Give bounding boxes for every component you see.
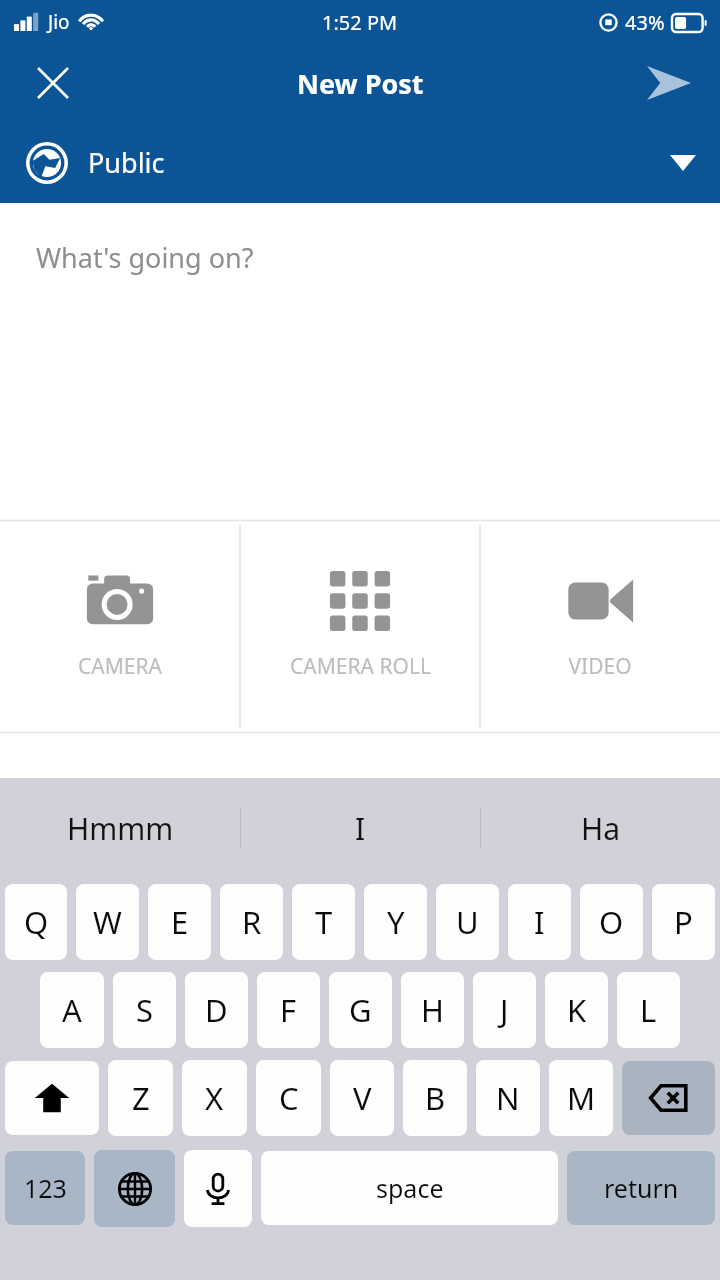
button[interactable]: M bbox=[549, 1060, 613, 1136]
staticText: S bbox=[136, 989, 154, 1031]
staticText: M bbox=[567, 1077, 596, 1119]
staticText: H bbox=[421, 989, 444, 1031]
staticText: New Post bbox=[297, 65, 424, 102]
button[interactable]: C bbox=[256, 1060, 321, 1136]
button[interactable]: Shift bbox=[5, 1061, 99, 1135]
button[interactable]: V bbox=[330, 1060, 394, 1136]
staticText: return bbox=[604, 1171, 679, 1205]
staticText: E bbox=[171, 901, 189, 943]
button[interactable]: J bbox=[473, 972, 536, 1048]
button[interactable]: Close bbox=[20, 50, 86, 116]
button[interactable]: L bbox=[617, 972, 680, 1048]
staticText: N bbox=[496, 1077, 520, 1119]
staticText: 1:52 PM bbox=[322, 9, 398, 36]
button[interactable]: CAMERA bbox=[0, 520, 240, 733]
button[interactable]: Dictate bbox=[184, 1150, 252, 1227]
button[interactable]: X bbox=[182, 1060, 247, 1136]
button[interactable]: P bbox=[652, 884, 715, 960]
staticText: Ha bbox=[581, 808, 621, 849]
button[interactable]: Send bbox=[634, 48, 704, 118]
button[interactable]: VIDEO bbox=[480, 520, 720, 733]
staticText: R bbox=[242, 901, 262, 943]
staticText: 43% bbox=[625, 9, 665, 36]
button[interactable]: U bbox=[436, 884, 499, 960]
button[interactable]: D bbox=[185, 972, 248, 1048]
button[interactable]: Hmmm bbox=[0, 778, 240, 878]
staticText: P bbox=[674, 901, 693, 943]
staticText: CAMERA bbox=[78, 652, 162, 681]
button[interactable]: A bbox=[40, 972, 104, 1048]
button[interactable]: return bbox=[567, 1151, 715, 1225]
button[interactable]: Switch language bbox=[94, 1150, 175, 1227]
staticText: G bbox=[349, 989, 372, 1031]
staticText: VIDEO bbox=[568, 652, 632, 681]
staticText: K bbox=[567, 989, 587, 1031]
staticText: T bbox=[315, 901, 333, 943]
staticText: B bbox=[425, 1077, 446, 1119]
staticText: space bbox=[376, 1171, 444, 1205]
button[interactable]: H bbox=[401, 972, 464, 1048]
staticText: V bbox=[353, 1077, 372, 1119]
button[interactable]: Y bbox=[364, 884, 427, 960]
button[interactable]: Public bbox=[0, 122, 720, 203]
button[interactable]: Ha bbox=[481, 778, 720, 878]
staticText: L bbox=[640, 989, 657, 1031]
staticText: 123 bbox=[24, 1171, 67, 1205]
button[interactable]: W bbox=[76, 884, 139, 960]
button[interactable]: S bbox=[113, 972, 176, 1048]
staticText: D bbox=[205, 989, 228, 1031]
staticText: O bbox=[599, 901, 624, 943]
staticText: I bbox=[534, 901, 545, 943]
staticText: A bbox=[62, 989, 82, 1031]
button[interactable]: O bbox=[580, 884, 643, 960]
staticText: U bbox=[456, 901, 479, 943]
button[interactable]: Backspace bbox=[622, 1061, 715, 1135]
button[interactable]: E bbox=[148, 884, 211, 960]
button[interactable]: K bbox=[545, 972, 608, 1048]
staticText: Q bbox=[24, 901, 49, 943]
staticText: Y bbox=[387, 901, 405, 943]
button[interactable]: CAMERA ROLL bbox=[240, 520, 480, 733]
button[interactable]: space bbox=[261, 1151, 558, 1225]
button[interactable]: I bbox=[241, 778, 480, 878]
staticText: F bbox=[280, 989, 297, 1031]
button[interactable]: R bbox=[220, 884, 283, 960]
button[interactable]: F bbox=[257, 972, 320, 1048]
button[interactable]: Q bbox=[5, 884, 67, 960]
button[interactable]: I bbox=[508, 884, 571, 960]
button[interactable]: G bbox=[329, 972, 392, 1048]
button[interactable]: N bbox=[476, 1060, 540, 1136]
staticText: CAMERA ROLL bbox=[290, 652, 431, 681]
staticText: C bbox=[279, 1077, 299, 1119]
button[interactable]: What's going on? bbox=[0, 203, 720, 520]
staticText: What's going on? bbox=[36, 239, 254, 276]
staticText: Public bbox=[88, 144, 165, 181]
button[interactable]: T bbox=[292, 884, 355, 960]
button[interactable]: 123 bbox=[5, 1151, 85, 1225]
staticText: X bbox=[205, 1077, 224, 1119]
staticText: Z bbox=[132, 1077, 150, 1119]
staticText: W bbox=[93, 901, 122, 943]
staticText: J bbox=[500, 989, 509, 1031]
button[interactable]: B bbox=[403, 1060, 467, 1136]
staticText: Jio bbox=[48, 9, 70, 35]
button[interactable]: Z bbox=[108, 1060, 173, 1136]
staticText: I bbox=[355, 808, 366, 849]
staticText: Hmmm bbox=[67, 808, 174, 849]
